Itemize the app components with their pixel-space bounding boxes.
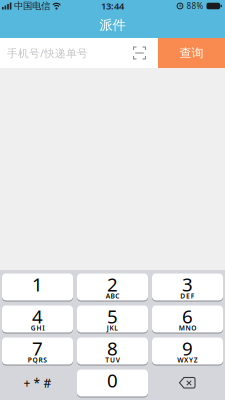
button[interactable]: 6 xyxy=(152,305,223,332)
staticText: 6 xyxy=(182,304,193,329)
staticText: TUV xyxy=(105,356,120,364)
staticText: WXYZ xyxy=(177,356,198,364)
button[interactable]: + * # xyxy=(2,369,73,396)
staticText: 1 xyxy=(32,272,43,297)
staticText: GHI xyxy=(31,324,44,332)
button[interactable]: 0 xyxy=(77,369,148,396)
button[interactable]: 3 xyxy=(152,273,223,300)
staticText: 13:44 xyxy=(101,0,124,12)
staticText: MNO xyxy=(179,324,196,332)
staticText: 9 xyxy=(182,336,193,361)
staticText: 手机号/快递单号 xyxy=(7,46,88,60)
staticText: DEF xyxy=(180,292,195,300)
staticText: 3 xyxy=(182,272,193,297)
staticText: + * # xyxy=(23,375,51,391)
staticText: 4 xyxy=(32,304,43,329)
button[interactable]: 5 xyxy=(77,305,148,332)
staticText: JKL xyxy=(107,324,118,332)
button[interactable]: 扫描 xyxy=(133,46,158,59)
staticText: 5 xyxy=(107,304,118,329)
staticText: ABC xyxy=(106,292,119,300)
button[interactable]: 查询 xyxy=(158,38,225,68)
button[interactable]: 9 xyxy=(152,337,223,364)
button[interactable]: 7 xyxy=(2,337,73,364)
staticText: 2 xyxy=(107,272,118,297)
staticText: 派件 xyxy=(99,17,125,33)
button[interactable]: 4 xyxy=(2,305,73,332)
button[interactable]: 手机号/快递单号 xyxy=(0,38,158,68)
staticText: 7 xyxy=(32,336,43,361)
button[interactable]: 2 xyxy=(77,273,148,300)
button[interactable]: 1 xyxy=(2,273,73,300)
staticText: 8 xyxy=(107,336,118,361)
staticText: 0 xyxy=(107,368,118,393)
button[interactable]: 删除 xyxy=(152,369,223,396)
staticText: 查询 xyxy=(179,46,203,60)
staticText: 88% xyxy=(186,1,203,11)
staticText: 中国电信 xyxy=(14,0,50,12)
staticText: PQRS xyxy=(28,356,47,364)
button[interactable]: 8 xyxy=(77,337,148,364)
